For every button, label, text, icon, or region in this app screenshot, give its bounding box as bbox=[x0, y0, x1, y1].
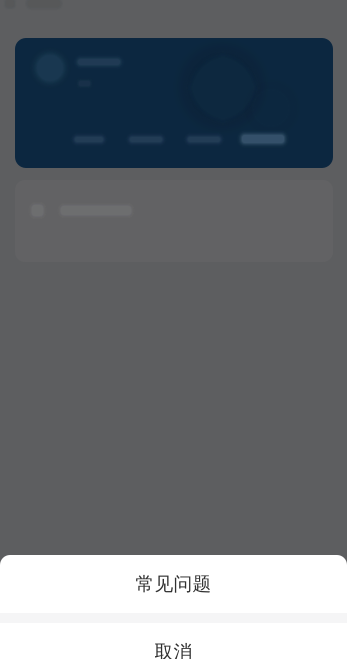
staticText: 常见问题 bbox=[135, 572, 211, 595]
button[interactable]: 常见问题 bbox=[0, 555, 347, 613]
button[interactable]: 取消 bbox=[0, 623, 347, 659]
staticText: 取消 bbox=[154, 640, 192, 659]
